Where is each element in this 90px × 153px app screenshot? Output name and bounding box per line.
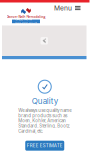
staticText: Quality bbox=[32, 96, 58, 106]
staticText: CALL NOW 303-555-0147 bbox=[15, 16, 37, 27]
button[interactable]: Denver Bath Remodeling home bbox=[0, 5, 46, 23]
staticText: Menu bbox=[54, 4, 72, 12]
button[interactable]: Menu bbox=[54, 4, 89, 24]
staticText: We always use quality name brand product… bbox=[18, 108, 71, 134]
button[interactable]: FREE ESTIMATE bbox=[25, 141, 64, 151]
staticText: Denver Bath Remodeling bbox=[6, 14, 45, 19]
staticText: FREE ESTIMATE bbox=[27, 143, 63, 148]
